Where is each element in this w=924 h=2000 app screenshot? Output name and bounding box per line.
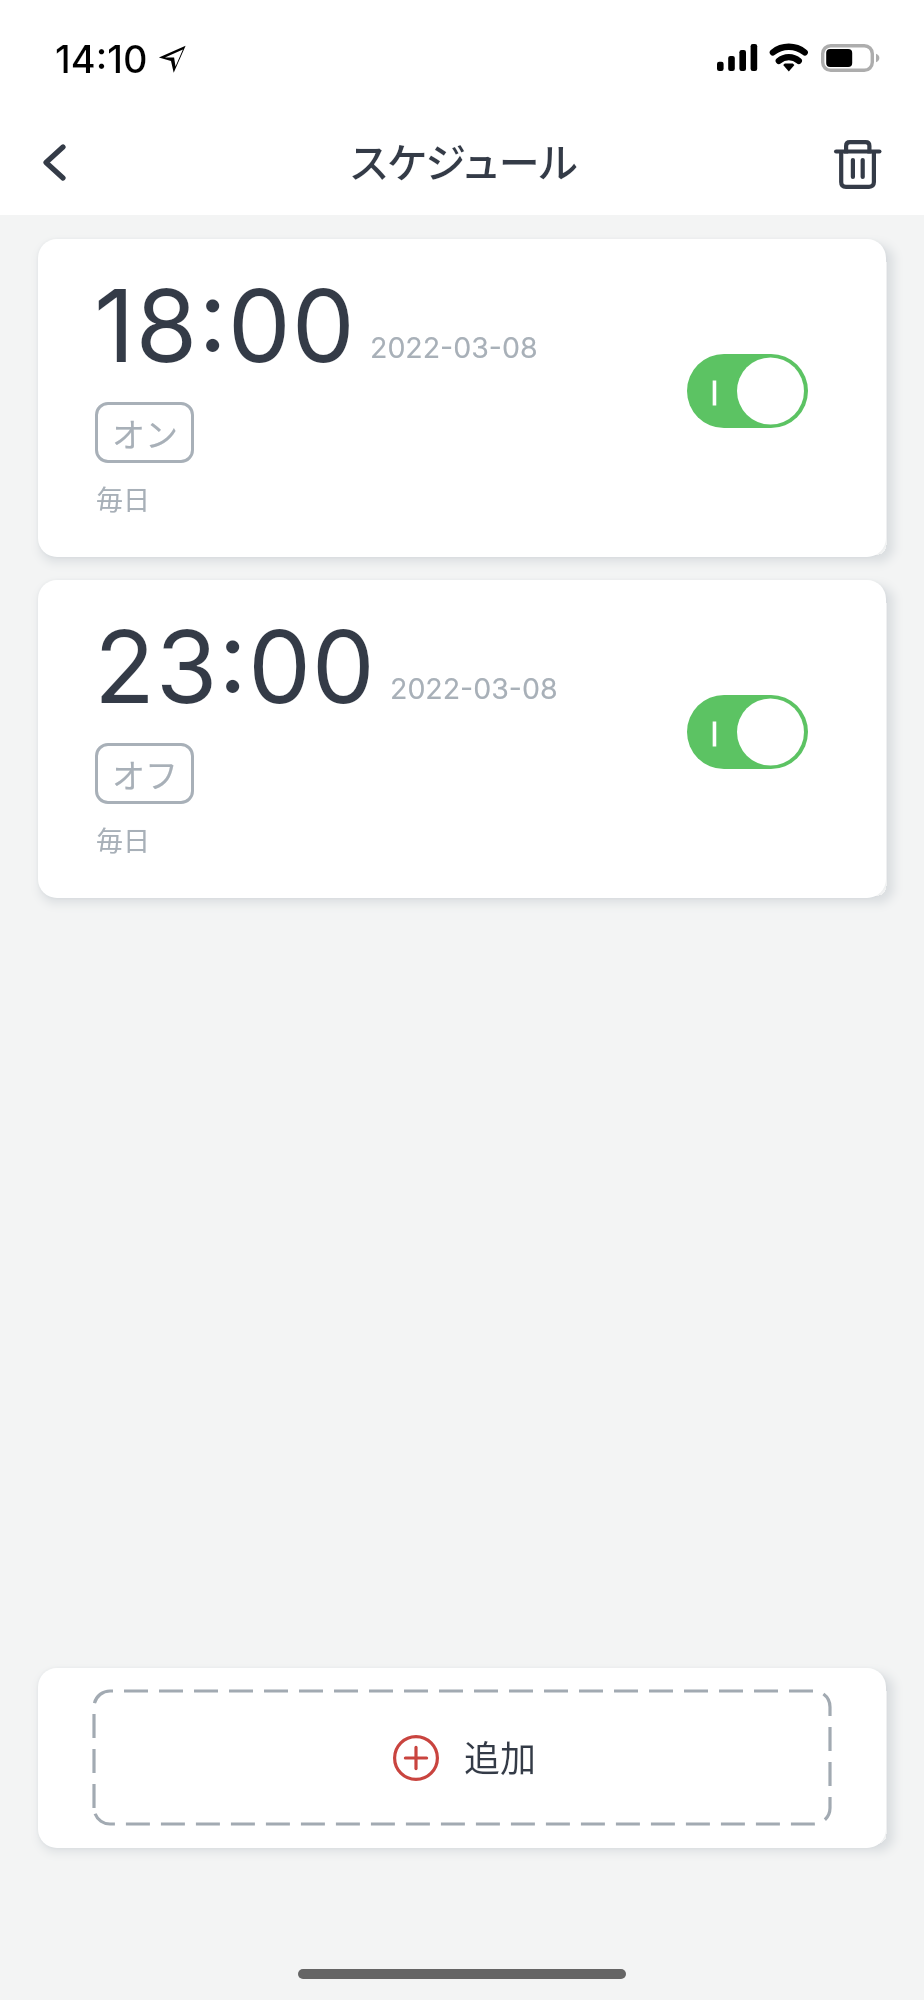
button[interactable]: 18:00 bbox=[38, 239, 886, 557]
staticText: オフ bbox=[112, 750, 178, 798]
staticText: 毎日 bbox=[96, 820, 150, 859]
button[interactable]: Back bbox=[11, 117, 101, 207]
staticText: 毎日 bbox=[96, 479, 150, 518]
staticText: 18:00 bbox=[94, 265, 356, 386]
staticText: 14:10 bbox=[55, 36, 148, 82]
button[interactable]: Toggle alarm bbox=[687, 354, 808, 428]
staticText: 23:00 bbox=[94, 606, 376, 727]
staticText: スケジュール bbox=[0, 130, 924, 189]
staticText: 2022-03-08 bbox=[370, 330, 538, 364]
staticText: 追加 bbox=[464, 1730, 537, 1782]
staticText: オン bbox=[112, 409, 178, 457]
button[interactable]: Delete bbox=[812, 117, 902, 207]
staticText: 2022-03-08 bbox=[390, 671, 558, 705]
button[interactable]: 23:00 bbox=[38, 580, 886, 898]
button[interactable]: 追加 bbox=[38, 1668, 886, 1848]
button[interactable]: Toggle alarm bbox=[687, 695, 808, 769]
